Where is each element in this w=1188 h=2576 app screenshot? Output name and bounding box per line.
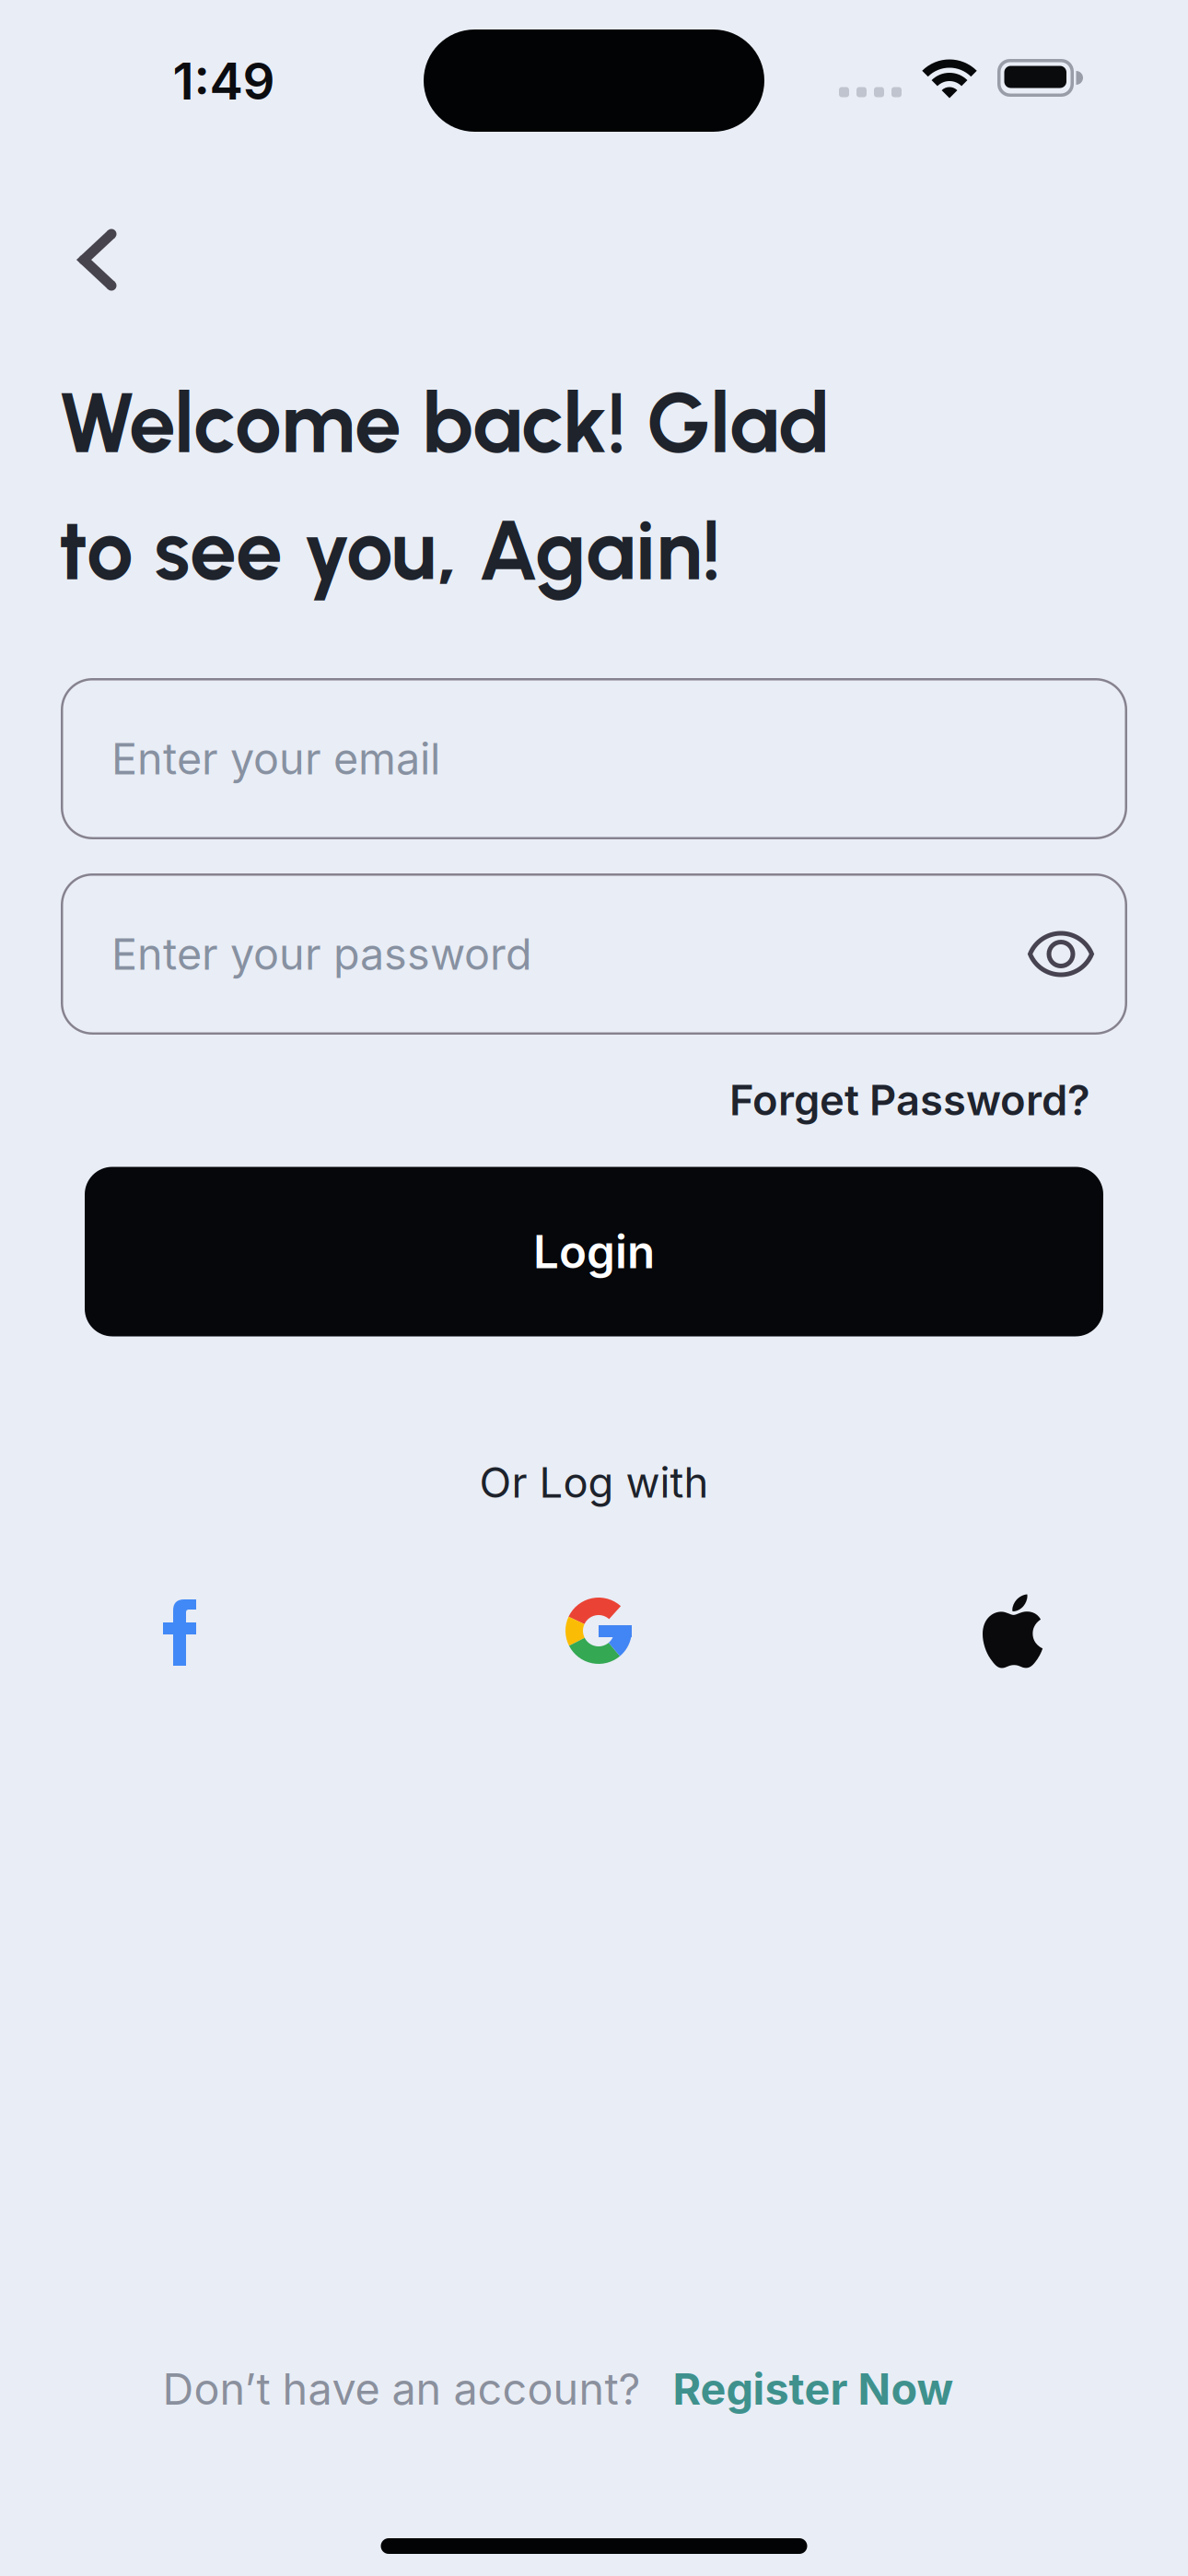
button[interactable]: Show password bbox=[1028, 930, 1094, 978]
staticText: Login bbox=[533, 1224, 655, 1279]
staticText: Enter your password bbox=[111, 928, 532, 980]
button[interactable]: Forget Password? bbox=[729, 1075, 1090, 1125]
button[interactable]: Register Now bbox=[673, 2363, 954, 2415]
staticText: Welcome back! Glad bbox=[58, 373, 830, 473]
staticText: Don’t have an account? bbox=[163, 2363, 641, 2415]
button[interactable]: Log in with Facebook bbox=[161, 1598, 198, 1668]
button[interactable]: Log in with Google bbox=[564, 1596, 634, 1666]
staticText: to see you, Again! bbox=[58, 500, 721, 600]
staticText: Register Now bbox=[673, 2363, 954, 2415]
button[interactable]: Login bbox=[85, 1167, 1103, 1336]
staticText: Enter your email bbox=[111, 733, 440, 785]
button[interactable]: Log in with Apple bbox=[981, 1592, 1045, 1670]
staticText: Or Log with bbox=[479, 1457, 709, 1508]
button[interactable]: Back bbox=[77, 228, 118, 291]
staticText: Forget Password? bbox=[729, 1075, 1090, 1125]
staticText: 1:49 bbox=[173, 51, 275, 111]
